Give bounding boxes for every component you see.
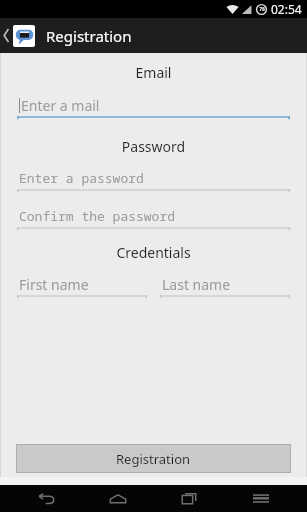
button[interactable]: Home <box>93 485 143 512</box>
button[interactable]: Confirm the password <box>17 205 290 232</box>
staticText: 78 <box>259 6 265 13</box>
button[interactable]: Back <box>0 18 37 53</box>
staticText: Registration <box>116 450 191 468</box>
button[interactable]: Last name <box>160 273 290 300</box>
staticText: Credentials <box>0 243 307 262</box>
staticText: Last name <box>162 275 231 294</box>
staticText: Enter a password <box>19 169 144 187</box>
button[interactable]: Enter a mail <box>17 94 290 121</box>
button[interactable]: Menu <box>236 485 286 512</box>
button[interactable]: Registration <box>17 445 290 472</box>
staticText: Enter a mail <box>21 96 100 115</box>
button[interactable]: Recent apps <box>164 485 214 512</box>
staticText: Confirm the password <box>19 207 176 225</box>
staticText: First name <box>19 275 89 294</box>
staticText: Registration <box>46 26 132 46</box>
button[interactable]: Back <box>21 485 71 512</box>
button[interactable]: Enter a password <box>17 167 290 194</box>
staticText: Password <box>0 137 307 156</box>
staticText: Email <box>0 63 307 82</box>
button[interactable]: First name <box>17 273 147 300</box>
staticText: 02:54 <box>271 1 302 17</box>
